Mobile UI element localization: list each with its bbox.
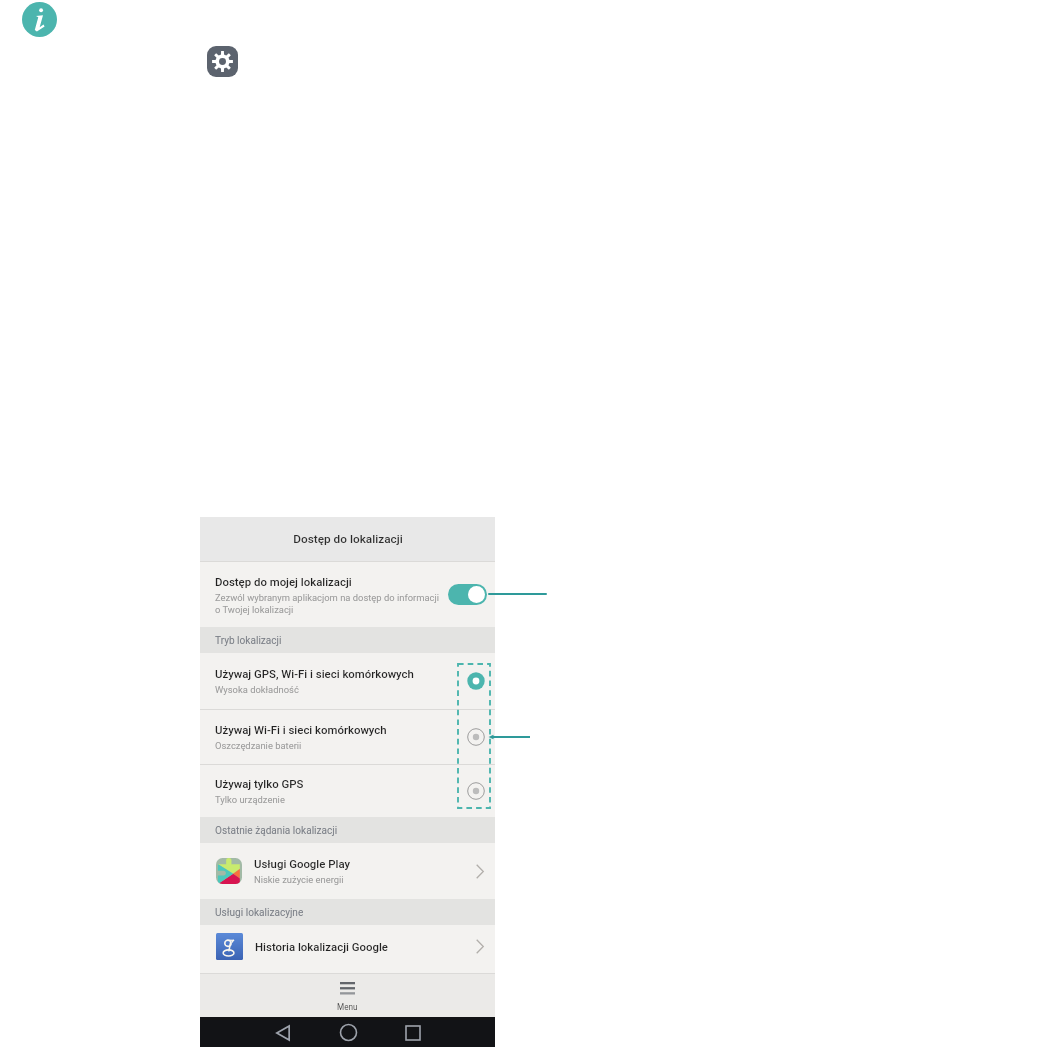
staticText: Dostęp do lokalizacji bbox=[293, 532, 403, 546]
staticText: Usługi Google Play bbox=[254, 857, 351, 870]
button[interactable]: Back bbox=[262, 1017, 304, 1047]
staticText: Historia lokalizacji Google bbox=[255, 940, 388, 953]
staticText: Tylko urządzenie bbox=[215, 794, 285, 805]
button[interactable]: Usługi Google Play bbox=[200, 843, 495, 899]
button[interactable]: Używaj Wi-Fi i sieci komórkowych bbox=[200, 710, 495, 764]
staticText: Menu bbox=[337, 1002, 358, 1012]
button[interactable]: Recent apps bbox=[392, 1017, 434, 1047]
staticText: Używaj GPS, Wi-Fi i sieci komórkowych bbox=[215, 667, 414, 680]
staticText: Wysoka dokładność bbox=[215, 684, 299, 695]
button[interactable]: Menu bbox=[200, 974, 495, 1017]
button[interactable]: Select Używaj Wi-Fi i sieci komórkowych bbox=[465, 726, 487, 748]
button[interactable]: Information bbox=[22, 2, 57, 37]
button[interactable]: Select Używaj GPS, Wi-Fi i sieci komórko… bbox=[465, 670, 487, 692]
staticText: Niskie zużycie energii bbox=[254, 874, 344, 885]
button[interactable]: Historia lokalizacji Google bbox=[200, 925, 495, 973]
button[interactable]: Location access toggle bbox=[448, 584, 487, 605]
staticText: Dostęp do mojej lokalizacji bbox=[215, 575, 352, 588]
button[interactable]: Select Używaj tylko GPS bbox=[465, 780, 487, 802]
staticText: Usługi lokalizacyjne bbox=[215, 907, 304, 919]
button[interactable]: Settings bbox=[207, 46, 238, 77]
staticText: Zezwól wybranym aplikacjom na dostęp do … bbox=[215, 592, 439, 615]
button[interactable]: Home bbox=[327, 1017, 369, 1047]
button[interactable]: Dostęp do mojej lokalizacji bbox=[200, 562, 495, 627]
staticText: Oszczędzanie baterii bbox=[215, 740, 302, 751]
staticText: Używaj tylko GPS bbox=[215, 777, 304, 790]
staticText: Używaj Wi-Fi i sieci komórkowych bbox=[215, 723, 387, 736]
button[interactable]: Używaj GPS, Wi-Fi i sieci komórkowych bbox=[200, 653, 495, 709]
staticText: Tryb lokalizacji bbox=[215, 635, 282, 647]
button[interactable]: Używaj tylko GPS bbox=[200, 765, 495, 817]
staticText: Ostatnie żądania lokalizacji bbox=[215, 825, 338, 837]
